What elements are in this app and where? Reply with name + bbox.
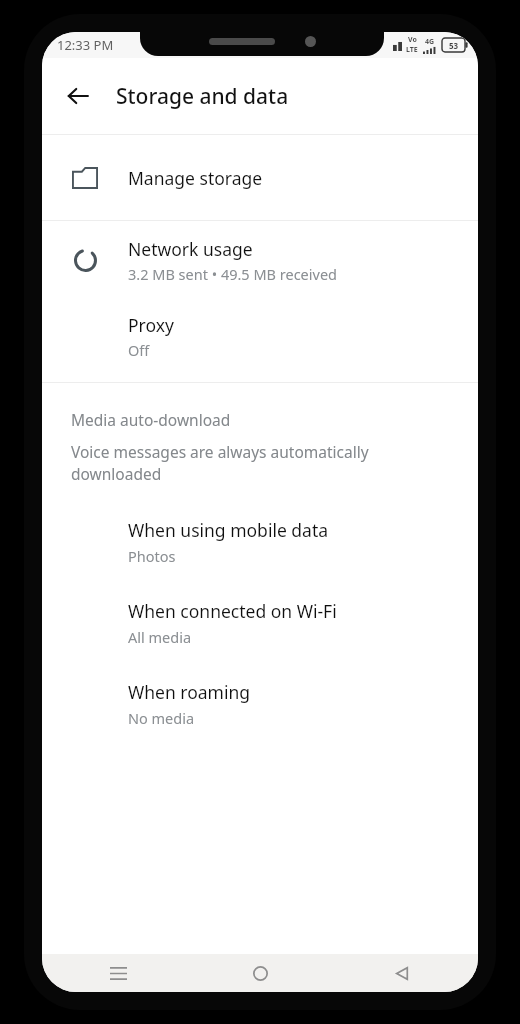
staticText: Off xyxy=(128,340,150,360)
staticText: Photos xyxy=(128,546,176,566)
button[interactable]: Manage storage xyxy=(42,135,478,220)
staticText: When connected on Wi-Fi xyxy=(128,599,337,623)
staticText: When using mobile data xyxy=(128,518,329,542)
button[interactable]: Network usage xyxy=(42,221,478,299)
staticText: Vo xyxy=(408,35,417,45)
button[interactable]: Home xyxy=(238,954,282,992)
button[interactable]: When roaming xyxy=(42,674,478,736)
staticText: All media xyxy=(128,627,192,647)
staticText: 53 xyxy=(449,40,459,51)
staticText: 3.2 MB sent • 49.5 MB received xyxy=(128,264,338,284)
button[interactable]: Recent apps xyxy=(96,954,140,992)
button[interactable]: Back xyxy=(54,72,102,120)
staticText: Media auto-download xyxy=(71,409,231,430)
button[interactable]: When connected on Wi-Fi xyxy=(42,593,478,655)
staticText: Proxy xyxy=(128,313,174,337)
staticText: Manage storage xyxy=(128,166,263,190)
staticText: Network usage xyxy=(128,237,253,261)
staticText: When roaming xyxy=(128,680,251,704)
staticText: Storage and data xyxy=(116,82,289,111)
staticText: 4G xyxy=(425,37,435,47)
staticText: LTE xyxy=(406,45,418,55)
button[interactable]: When using mobile data xyxy=(42,512,478,574)
staticText: 12:33 PM xyxy=(57,36,114,54)
staticText: Voice messages are always automatically … xyxy=(71,441,418,484)
staticText: No media xyxy=(128,708,195,728)
button[interactable]: Back xyxy=(380,954,424,992)
button[interactable]: Proxy xyxy=(42,299,478,373)
